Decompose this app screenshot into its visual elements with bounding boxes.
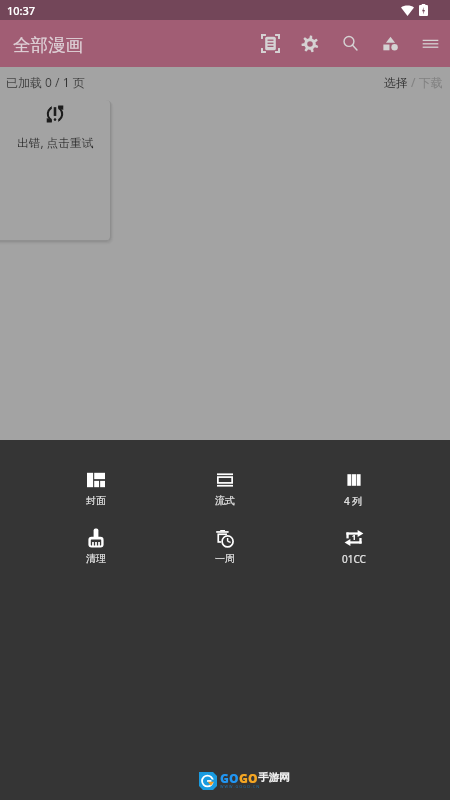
staticText: 手游网 (258, 771, 290, 784)
staticText: 出错, 点击重试 (17, 134, 94, 150)
button[interactable]: 选择 (384, 75, 408, 90)
staticText: 01CC (342, 552, 366, 566)
staticText: 全部漫画 (13, 34, 83, 56)
button[interactable]: 流式 (160, 470, 289, 507)
staticText: 1 (352, 533, 357, 543)
staticText: 4 列 (344, 494, 363, 508)
button[interactable]: 4 列 (289, 470, 418, 508)
staticText: 一周 (215, 552, 235, 565)
staticText: 封面 (86, 494, 106, 507)
staticText: 10:37 (7, 3, 36, 18)
button[interactable]: Search (330, 20, 370, 67)
button[interactable]: Menu (410, 20, 450, 67)
staticText: 流式 (215, 494, 235, 507)
button[interactable]: Settings (290, 20, 330, 67)
button[interactable]: Filter shapes (370, 20, 410, 67)
staticText: GO (239, 770, 258, 786)
staticText: W W W . G O G O . C N (220, 784, 260, 789)
button[interactable]: Scan (250, 20, 290, 67)
staticText: / 下载 (408, 74, 443, 90)
button[interactable]: 清理 (32, 528, 160, 565)
button[interactable]: 一周 (160, 528, 289, 565)
button[interactable]: 出错, 点击重试 (0, 100, 110, 240)
button[interactable]: 1 (289, 528, 418, 566)
staticText: GO (220, 770, 239, 786)
staticText: 已加载 0 / 1 页 (6, 74, 85, 90)
button[interactable]: 封面 (32, 470, 160, 507)
staticText: 清理 (86, 552, 106, 565)
